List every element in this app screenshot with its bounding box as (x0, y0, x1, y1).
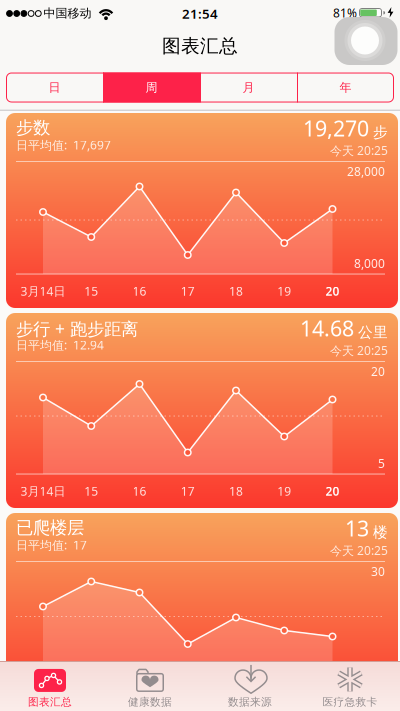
button[interactable]: 年 (297, 72, 394, 102)
staticText: 健康数据 (128, 695, 172, 708)
staticText: 8,000 (354, 255, 385, 271)
staticText: 20 (325, 283, 339, 299)
staticText: 数据来源 (228, 695, 272, 708)
staticText: 19,270 步 (303, 114, 388, 142)
staticText: 月 (242, 80, 254, 95)
staticText: 日平均值: 12.94 (16, 337, 104, 353)
button[interactable]: 日 (6, 72, 103, 102)
staticText: 今天 20:25 (330, 142, 388, 158)
staticText: 20 (325, 683, 339, 699)
staticText: 16 (132, 683, 146, 699)
staticText: 已爬楼层 (16, 517, 84, 538)
staticText: 图表汇总 (28, 695, 72, 708)
staticText: 3月14日 (20, 483, 65, 499)
staticText: 3月14日 (20, 683, 65, 699)
staticText: 19 (277, 283, 291, 299)
button[interactable]: 月 (200, 72, 297, 102)
staticText: 周 (145, 80, 157, 95)
staticText: 中国移动 (43, 6, 91, 21)
staticText: 16 (132, 283, 146, 299)
staticText: 医疗急救卡 (322, 695, 377, 708)
staticText: 81% (333, 5, 357, 21)
button[interactable]: 图表汇总 (0, 662, 100, 710)
staticText: 步数 (16, 117, 50, 138)
staticText: 18 (229, 283, 243, 299)
staticText: 13 楼 (345, 514, 388, 542)
staticText: 今天 20:25 (330, 542, 388, 558)
staticText: 15 (84, 283, 98, 299)
button[interactable]: 医疗急救卡 (300, 662, 400, 710)
button[interactable]: 健康数据 (100, 662, 200, 710)
staticText: 20 (371, 363, 385, 379)
staticText: 19 (277, 483, 291, 499)
staticText: 21:54 (182, 5, 218, 22)
staticText: 5 (378, 455, 385, 471)
staticText: 18 (229, 683, 243, 699)
button[interactable]: 周 (103, 72, 200, 102)
staticText: 3月14日 (20, 283, 65, 299)
button[interactable]: AssistiveTouch (334, 17, 397, 65)
staticText: 17 (181, 283, 195, 299)
staticText: 28,000 (347, 163, 385, 179)
staticText: 20 (325, 483, 339, 499)
staticText: 30 (371, 563, 385, 579)
staticText: 18 (229, 483, 243, 499)
staticText: 步行 + 跑步距离 (16, 317, 138, 340)
button[interactable]: 数据来源 (200, 662, 300, 710)
staticText: 日平均值: 17 (16, 537, 87, 553)
staticText: 今天 20:25 (330, 342, 388, 358)
staticText: 16 (132, 483, 146, 499)
staticText: 图表汇总 (162, 34, 238, 57)
staticText: 日平均值: 17,697 (16, 137, 111, 153)
staticText: 17 (181, 483, 195, 499)
staticText: 15 (84, 483, 98, 499)
staticText: 日 (48, 80, 60, 95)
staticText: 14.68 公里 (300, 314, 388, 342)
staticText: 年 (339, 80, 351, 95)
